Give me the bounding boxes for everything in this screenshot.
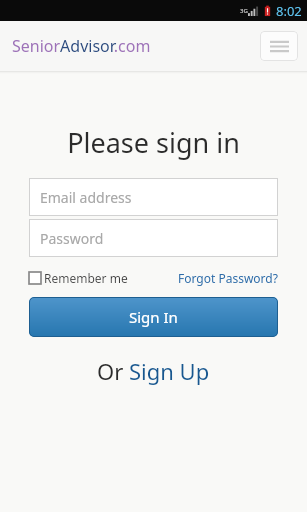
button[interactable]: Menu xyxy=(260,31,298,61)
button[interactable]: Sign Up xyxy=(129,356,210,386)
staticText: SeniorAdvisor.com xyxy=(12,35,151,57)
staticText: Remember me xyxy=(44,270,128,286)
staticText: 3G xyxy=(240,7,248,15)
staticText: Sign Up xyxy=(129,356,210,386)
button[interactable]: Password xyxy=(29,219,278,257)
button[interactable]: Email address xyxy=(29,178,278,216)
staticText: Password xyxy=(40,229,104,248)
staticText: Sign In xyxy=(129,307,178,327)
staticText: Email address xyxy=(40,188,132,207)
staticText: Or xyxy=(97,356,129,386)
staticText: Forgot Password? xyxy=(178,270,278,286)
staticText: 8:02 xyxy=(276,2,302,20)
button[interactable]: Forgot Password? xyxy=(178,270,278,286)
button[interactable]: Remember me xyxy=(29,270,128,286)
button[interactable]: Sign In xyxy=(29,297,278,337)
staticText: Please sign in xyxy=(0,124,307,161)
